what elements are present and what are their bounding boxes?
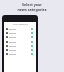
staticText: Pick categories [13, 23, 28, 25]
button[interactable] [6, 31, 33, 35]
button[interactable] [6, 44, 33, 48]
button[interactable] [6, 27, 33, 31]
button[interactable] [6, 52, 33, 56]
button[interactable] [6, 48, 33, 52]
staticText: Select your [22, 2, 42, 7]
button[interactable] [6, 40, 33, 44]
button[interactable] [6, 35, 33, 39]
staticText: news categories [17, 7, 47, 12]
